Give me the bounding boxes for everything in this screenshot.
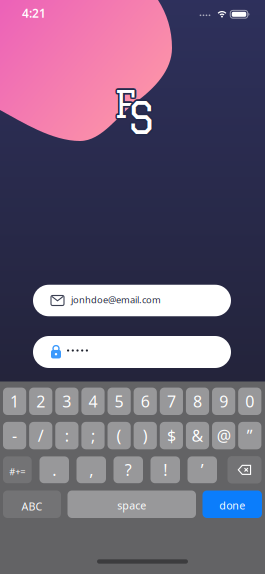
- staticText: @: [217, 425, 231, 446]
- staticText: .: [52, 459, 56, 480]
- button[interactable]: $: [160, 422, 183, 449]
- button[interactable]: jonhdoe@email.com: [33, 285, 231, 316]
- staticText: 4:21: [22, 5, 46, 21]
- staticText: S: [127, 91, 153, 141]
- staticText: &: [191, 425, 203, 446]
- staticText: 6: [141, 391, 150, 412]
- staticText: 3: [62, 391, 71, 412]
- button[interactable]: 6: [134, 388, 157, 415]
- button[interactable]: ?: [113, 456, 143, 483]
- staticText: 0: [245, 391, 254, 412]
- staticText: F: [112, 83, 134, 125]
- staticText: #+=: [9, 465, 25, 478]
- staticText: S: [126, 92, 152, 142]
- staticText: 8: [193, 391, 202, 412]
- staticText: 7: [167, 391, 176, 412]
- button[interactable]: space: [67, 490, 196, 518]
- staticText: F: [113, 82, 135, 123]
- button[interactable]: 3: [55, 388, 78, 415]
- button[interactable]: ”: [238, 422, 261, 449]
- button[interactable]: Password: [33, 336, 231, 368]
- button[interactable]: done: [202, 490, 262, 518]
- staticText: -: [12, 425, 17, 446]
- staticText: jonhdoe@email.com: [71, 293, 161, 306]
- staticText: 1: [10, 391, 19, 412]
- staticText: ”: [247, 425, 253, 446]
- staticText: S: [128, 92, 154, 142]
- staticText: $: [167, 425, 176, 446]
- button[interactable]: .: [39, 456, 69, 483]
- staticText: ): [143, 425, 148, 446]
- staticText: 9: [219, 391, 228, 412]
- staticText: done: [219, 498, 245, 512]
- button[interactable]: :: [55, 422, 78, 449]
- staticText: F: [114, 84, 136, 126]
- staticText: 5: [115, 391, 124, 412]
- button[interactable]: Delete: [227, 456, 261, 483]
- button[interactable]: ’: [187, 456, 217, 483]
- staticText: F: [113, 84, 135, 126]
- button[interactable]: &: [186, 422, 209, 449]
- staticText: 4: [88, 391, 97, 412]
- button[interactable]: 1: [3, 388, 26, 415]
- button[interactable]: #+=: [3, 456, 32, 483]
- button[interactable]: 0: [238, 388, 261, 415]
- staticText: S: [128, 94, 154, 144]
- button[interactable]: 7: [160, 388, 183, 415]
- staticText: F: [114, 81, 136, 123]
- button[interactable]: @: [212, 422, 235, 449]
- staticText: ;: [91, 425, 95, 446]
- button[interactable]: ABC: [3, 490, 61, 518]
- staticText: F: [115, 84, 137, 126]
- staticText: /: [38, 425, 44, 446]
- staticText: (: [117, 425, 122, 446]
- staticText: space: [117, 498, 146, 512]
- button[interactable]: ;: [81, 422, 105, 449]
- staticText: 2: [36, 391, 45, 412]
- button[interactable]: -: [3, 422, 26, 449]
- staticText: S: [129, 94, 155, 143]
- button[interactable]: 9: [212, 388, 235, 415]
- staticText: S: [128, 91, 154, 140]
- staticText: F: [116, 83, 138, 125]
- staticText: ’: [201, 459, 204, 480]
- staticText: F: [115, 82, 137, 123]
- button[interactable]: 8: [186, 388, 209, 415]
- button[interactable]: !: [150, 456, 180, 483]
- staticText: ,: [89, 459, 93, 480]
- staticText: S: [129, 91, 155, 141]
- button[interactable]: 4: [81, 388, 105, 415]
- staticText: !: [163, 459, 167, 480]
- button[interactable]: 2: [29, 388, 52, 415]
- button[interactable]: ,: [76, 456, 106, 483]
- button[interactable]: /: [29, 422, 52, 449]
- staticText: ?: [125, 459, 132, 480]
- button[interactable]: ): [134, 422, 157, 449]
- button[interactable]: (: [107, 422, 131, 449]
- button[interactable]: 5: [107, 388, 131, 415]
- staticText: :: [65, 425, 69, 446]
- staticText: S: [127, 94, 153, 143]
- staticText: F: [114, 83, 136, 125]
- staticText: ABC: [21, 499, 42, 514]
- staticText: S: [130, 92, 156, 142]
